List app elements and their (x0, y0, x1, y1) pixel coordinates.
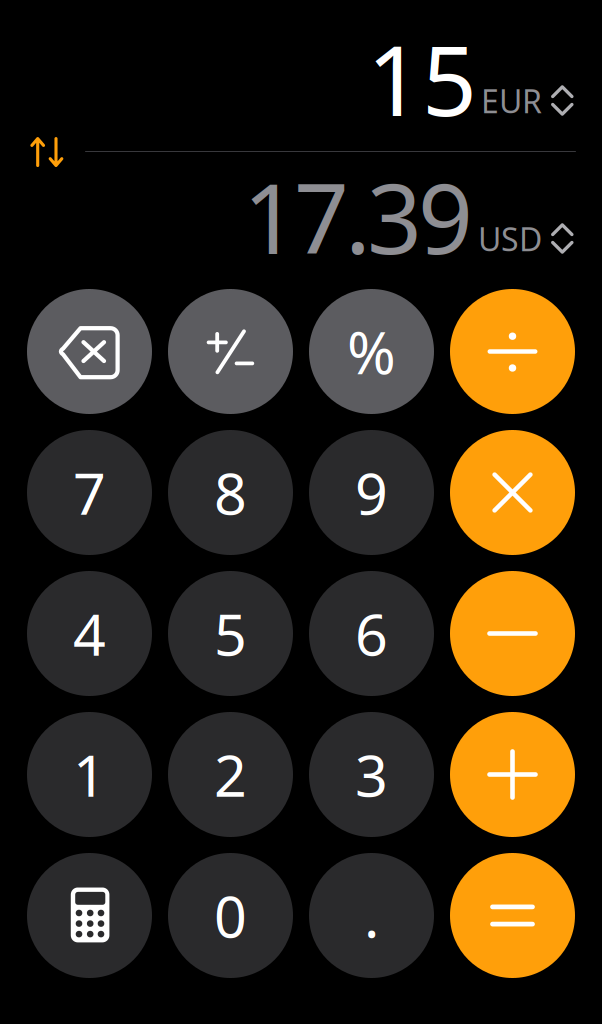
button[interactable]: Multiply (450, 430, 575, 555)
staticText: 3 (355, 736, 388, 812)
button[interactable]: 8 (168, 430, 293, 555)
button[interactable]: Decimal point (309, 853, 434, 978)
button[interactable]: Toggle sign (168, 289, 293, 414)
button[interactable]: Source currency EUR (469, 77, 581, 130)
button[interactable]: 4 (27, 571, 152, 696)
staticText: 2 (214, 736, 247, 812)
staticText: USD (478, 217, 542, 260)
staticText: 0 (214, 877, 247, 953)
button[interactable]: 7 (27, 430, 152, 555)
staticText: 15 (367, 15, 477, 142)
staticText: 17.39 (243, 153, 473, 280)
button[interactable]: Add (450, 712, 575, 837)
button[interactable]: Delete (27, 289, 152, 414)
staticText: 7 (73, 454, 106, 530)
staticText: EUR (481, 79, 542, 122)
button[interactable]: Divide (450, 289, 575, 414)
button[interactable]: Target currency USD (469, 215, 581, 268)
button[interactable]: 5 (168, 571, 293, 696)
button[interactable]: Swap currencies (16, 127, 78, 177)
button[interactable]: Equals (450, 853, 575, 978)
button[interactable]: 9 (309, 430, 434, 555)
button[interactable]: Subtract (450, 571, 575, 696)
staticText: . (364, 877, 379, 953)
button[interactable]: 0 (168, 853, 293, 978)
staticText: 8 (214, 454, 247, 530)
staticText: % (347, 312, 396, 390)
button[interactable]: 1 (27, 712, 152, 837)
button[interactable]: Calculator (27, 853, 152, 978)
button[interactable]: 6 (309, 571, 434, 696)
staticText: 9 (355, 454, 388, 530)
button[interactable]: Percent (309, 289, 434, 414)
staticText: 1 (73, 736, 106, 812)
staticText: 5 (214, 595, 247, 671)
staticText: 6 (355, 595, 388, 671)
button[interactable]: 2 (168, 712, 293, 837)
button[interactable]: 3 (309, 712, 434, 837)
staticText: 4 (73, 595, 106, 671)
